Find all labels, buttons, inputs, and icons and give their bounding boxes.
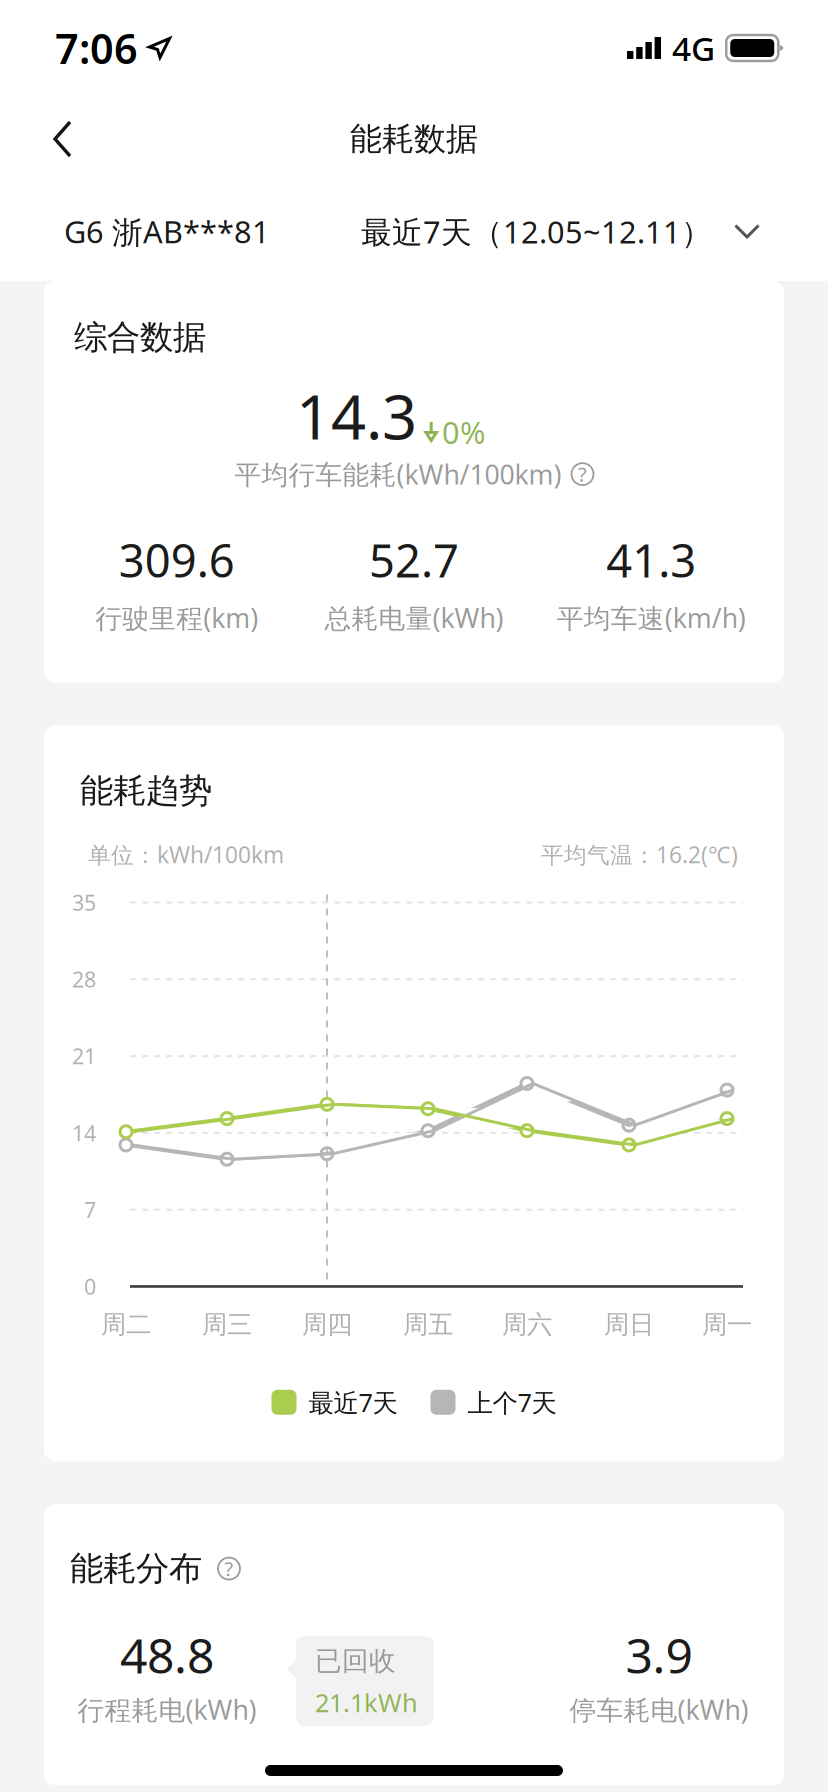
staticText: 最近7天 [308,1385,397,1419]
staticText: 52.7 [369,530,459,590]
staticText: 14.3 [296,375,417,456]
staticText: 0% [442,412,485,452]
staticText: ? [578,461,587,487]
staticText: 周二 [101,1309,151,1340]
staticText: 4G [672,26,715,70]
staticText: 平均气温：16.2(℃) [541,839,738,869]
staticText: 上个7天 [467,1385,556,1419]
staticText: 周五 [403,1309,453,1340]
staticText: 停车耗电(kWh) [569,1692,748,1727]
staticText: 能耗数据 [350,119,478,159]
staticText: 0 [84,1272,96,1301]
staticText: 41.3 [606,530,696,590]
staticText: 周一 [702,1309,752,1340]
staticText: 单位：kWh/100km [88,839,284,869]
button[interactable]: 最近7天（12.05~12.11） [361,197,760,266]
staticText: 周六 [502,1309,552,1340]
staticText: 已回收 [315,1645,396,1678]
staticText: 行程耗电(kWh) [77,1692,256,1727]
staticText: 周三 [202,1309,252,1340]
staticText: 综合数据 [74,317,206,358]
staticText: 3.9 [625,1623,692,1687]
staticText: 21.1kWh [315,1686,418,1719]
staticText: 周四 [302,1309,352,1340]
staticText: 行驶里程(km) [95,600,258,635]
staticText: 平均车速(km/h) [557,600,746,635]
staticText: 7 [84,1195,96,1224]
staticText: 21 [72,1042,96,1070]
staticText: 周日 [604,1309,654,1340]
staticText: 14 [72,1119,96,1147]
staticText: 7:06 [55,21,138,75]
staticText: 平均行车能耗(kWh/100km) [234,456,561,492]
staticText: 总耗电量(kWh) [324,600,503,635]
button[interactable]: Back [0,102,103,176]
staticText: 309.6 [119,530,235,590]
staticText: 28 [72,965,96,993]
staticText: G6 浙AB***81 [64,211,270,252]
staticText: 能耗趋势 [80,770,212,811]
staticText: 能耗分布 [70,1548,202,1589]
staticText: ? [224,1555,233,1582]
staticText: 35 [72,888,96,917]
staticText: 最近7天（12.05~12.11） [361,211,712,252]
staticText: 48.8 [120,1623,214,1687]
